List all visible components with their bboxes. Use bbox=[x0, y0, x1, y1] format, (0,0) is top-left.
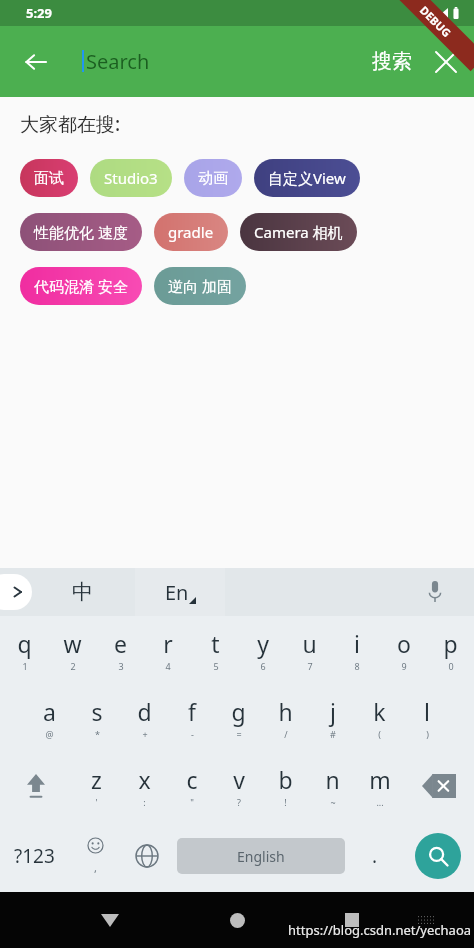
button[interactable]: Backspace bbox=[403, 752, 474, 820]
staticText: Studio3 bbox=[104, 168, 158, 188]
staticText: https://blog.csdn.net/yechaoa bbox=[288, 921, 472, 939]
button[interactable]: 面试 bbox=[20, 159, 78, 197]
button[interactable]: r bbox=[144, 616, 192, 684]
staticText: z bbox=[91, 764, 102, 795]
button[interactable]: d bbox=[121, 684, 168, 752]
staticText: g bbox=[231, 696, 246, 727]
button[interactable]: q bbox=[0, 616, 48, 684]
button[interactable]: 搜索 bbox=[372, 49, 412, 74]
staticText: 6 bbox=[260, 660, 266, 672]
staticText: 代码混淆 安全 bbox=[34, 276, 128, 296]
staticText: 0 bbox=[448, 660, 454, 672]
button[interactable]: l bbox=[403, 684, 450, 752]
staticText: w bbox=[63, 628, 82, 659]
button[interactable]: Shift bbox=[0, 752, 72, 820]
button[interactable]: n bbox=[309, 752, 356, 820]
staticText: d bbox=[137, 696, 152, 727]
button[interactable]: s bbox=[73, 684, 121, 752]
button[interactable]: p bbox=[427, 616, 474, 684]
button[interactable]: . bbox=[349, 820, 401, 892]
button[interactable]: 代码混淆 安全 bbox=[20, 267, 142, 305]
button[interactable]: Switch language bbox=[121, 820, 173, 892]
staticText: @ bbox=[45, 728, 54, 740]
button[interactable]: h bbox=[262, 684, 309, 752]
button[interactable]: v bbox=[215, 752, 262, 820]
staticText: a bbox=[43, 696, 56, 727]
button[interactable]: Back bbox=[14, 40, 58, 84]
button[interactable]: gradle bbox=[154, 213, 228, 251]
button[interactable]: Search bbox=[86, 48, 150, 75]
button[interactable]: j bbox=[309, 684, 356, 752]
staticText: - bbox=[191, 728, 194, 740]
staticText: v bbox=[233, 764, 245, 795]
button[interactable]: i bbox=[333, 616, 380, 684]
staticText: n bbox=[325, 764, 340, 795]
button[interactable]: ?123 bbox=[0, 820, 69, 892]
staticText: ' bbox=[95, 796, 98, 808]
staticText: ! bbox=[284, 796, 287, 808]
staticText: i bbox=[354, 628, 360, 659]
button[interactable]: x bbox=[120, 752, 168, 820]
staticText: DEBUG bbox=[417, 3, 454, 40]
button[interactable]: b bbox=[262, 752, 309, 820]
staticText: ? bbox=[237, 796, 241, 808]
button[interactable]: En bbox=[135, 568, 225, 616]
button[interactable]: o bbox=[380, 616, 427, 684]
button[interactable]: u bbox=[286, 616, 333, 684]
button[interactable]: Clear bbox=[426, 42, 466, 82]
button[interactable]: Emoji bbox=[69, 820, 121, 892]
staticText: ... bbox=[376, 796, 384, 808]
staticText: English bbox=[237, 847, 285, 866]
button[interactable]: Switch keyboard bbox=[406, 900, 446, 940]
button[interactable]: w bbox=[48, 616, 96, 684]
button[interactable]: m bbox=[356, 752, 403, 820]
button[interactable]: Studio3 bbox=[90, 159, 172, 197]
button[interactable]: Home bbox=[213, 896, 261, 944]
button[interactable]: f bbox=[168, 684, 215, 752]
staticText: s bbox=[91, 696, 103, 727]
staticText: ) bbox=[426, 728, 429, 740]
staticText: f bbox=[188, 696, 196, 727]
staticText: 5 bbox=[213, 660, 219, 672]
staticText: 5:29 bbox=[26, 4, 52, 22]
staticText: Camera 相机 bbox=[254, 222, 343, 242]
button[interactable]: y bbox=[239, 616, 286, 684]
staticText: p bbox=[443, 628, 458, 659]
button[interactable]: Voice input bbox=[225, 568, 474, 616]
staticText: 3 bbox=[118, 660, 124, 672]
button[interactable]: 逆向 加固 bbox=[154, 267, 246, 305]
staticText: gradle bbox=[168, 222, 214, 242]
staticText: 2 bbox=[70, 660, 76, 672]
button[interactable]: 性能优化 速度 bbox=[20, 213, 142, 251]
staticText: ~ bbox=[330, 796, 336, 808]
button[interactable]: k bbox=[356, 684, 403, 752]
staticText: 8 bbox=[354, 660, 360, 672]
staticText: # bbox=[330, 728, 336, 740]
staticText: 自定义View bbox=[268, 168, 346, 188]
button[interactable]: Search bbox=[401, 820, 474, 892]
button[interactable]: a bbox=[25, 684, 73, 752]
button[interactable]: t bbox=[192, 616, 239, 684]
button[interactable]: 自定义View bbox=[254, 159, 360, 197]
staticText: b bbox=[278, 764, 293, 795]
staticText: * bbox=[95, 728, 100, 740]
staticText: y bbox=[257, 628, 269, 659]
button[interactable]: Back bbox=[86, 896, 134, 944]
staticText: q bbox=[17, 628, 32, 659]
staticText: ?123 bbox=[14, 843, 55, 869]
button[interactable]: Expand bbox=[0, 574, 32, 610]
staticText: 动画 bbox=[198, 169, 228, 188]
staticText: 7 bbox=[307, 660, 313, 672]
button[interactable]: Camera 相机 bbox=[240, 213, 357, 251]
button[interactable]: c bbox=[168, 752, 215, 820]
staticText: " bbox=[190, 796, 194, 808]
button[interactable]: g bbox=[215, 684, 262, 752]
button[interactable]: Recents bbox=[328, 896, 376, 944]
button[interactable]: Chinese input bbox=[0, 568, 135, 616]
button[interactable]: English bbox=[177, 838, 345, 874]
staticText: 逆向 加固 bbox=[168, 276, 232, 296]
button[interactable]: 动画 bbox=[184, 159, 242, 197]
staticText: + bbox=[142, 728, 148, 740]
button[interactable]: e bbox=[96, 616, 144, 684]
button[interactable]: z bbox=[72, 752, 120, 820]
